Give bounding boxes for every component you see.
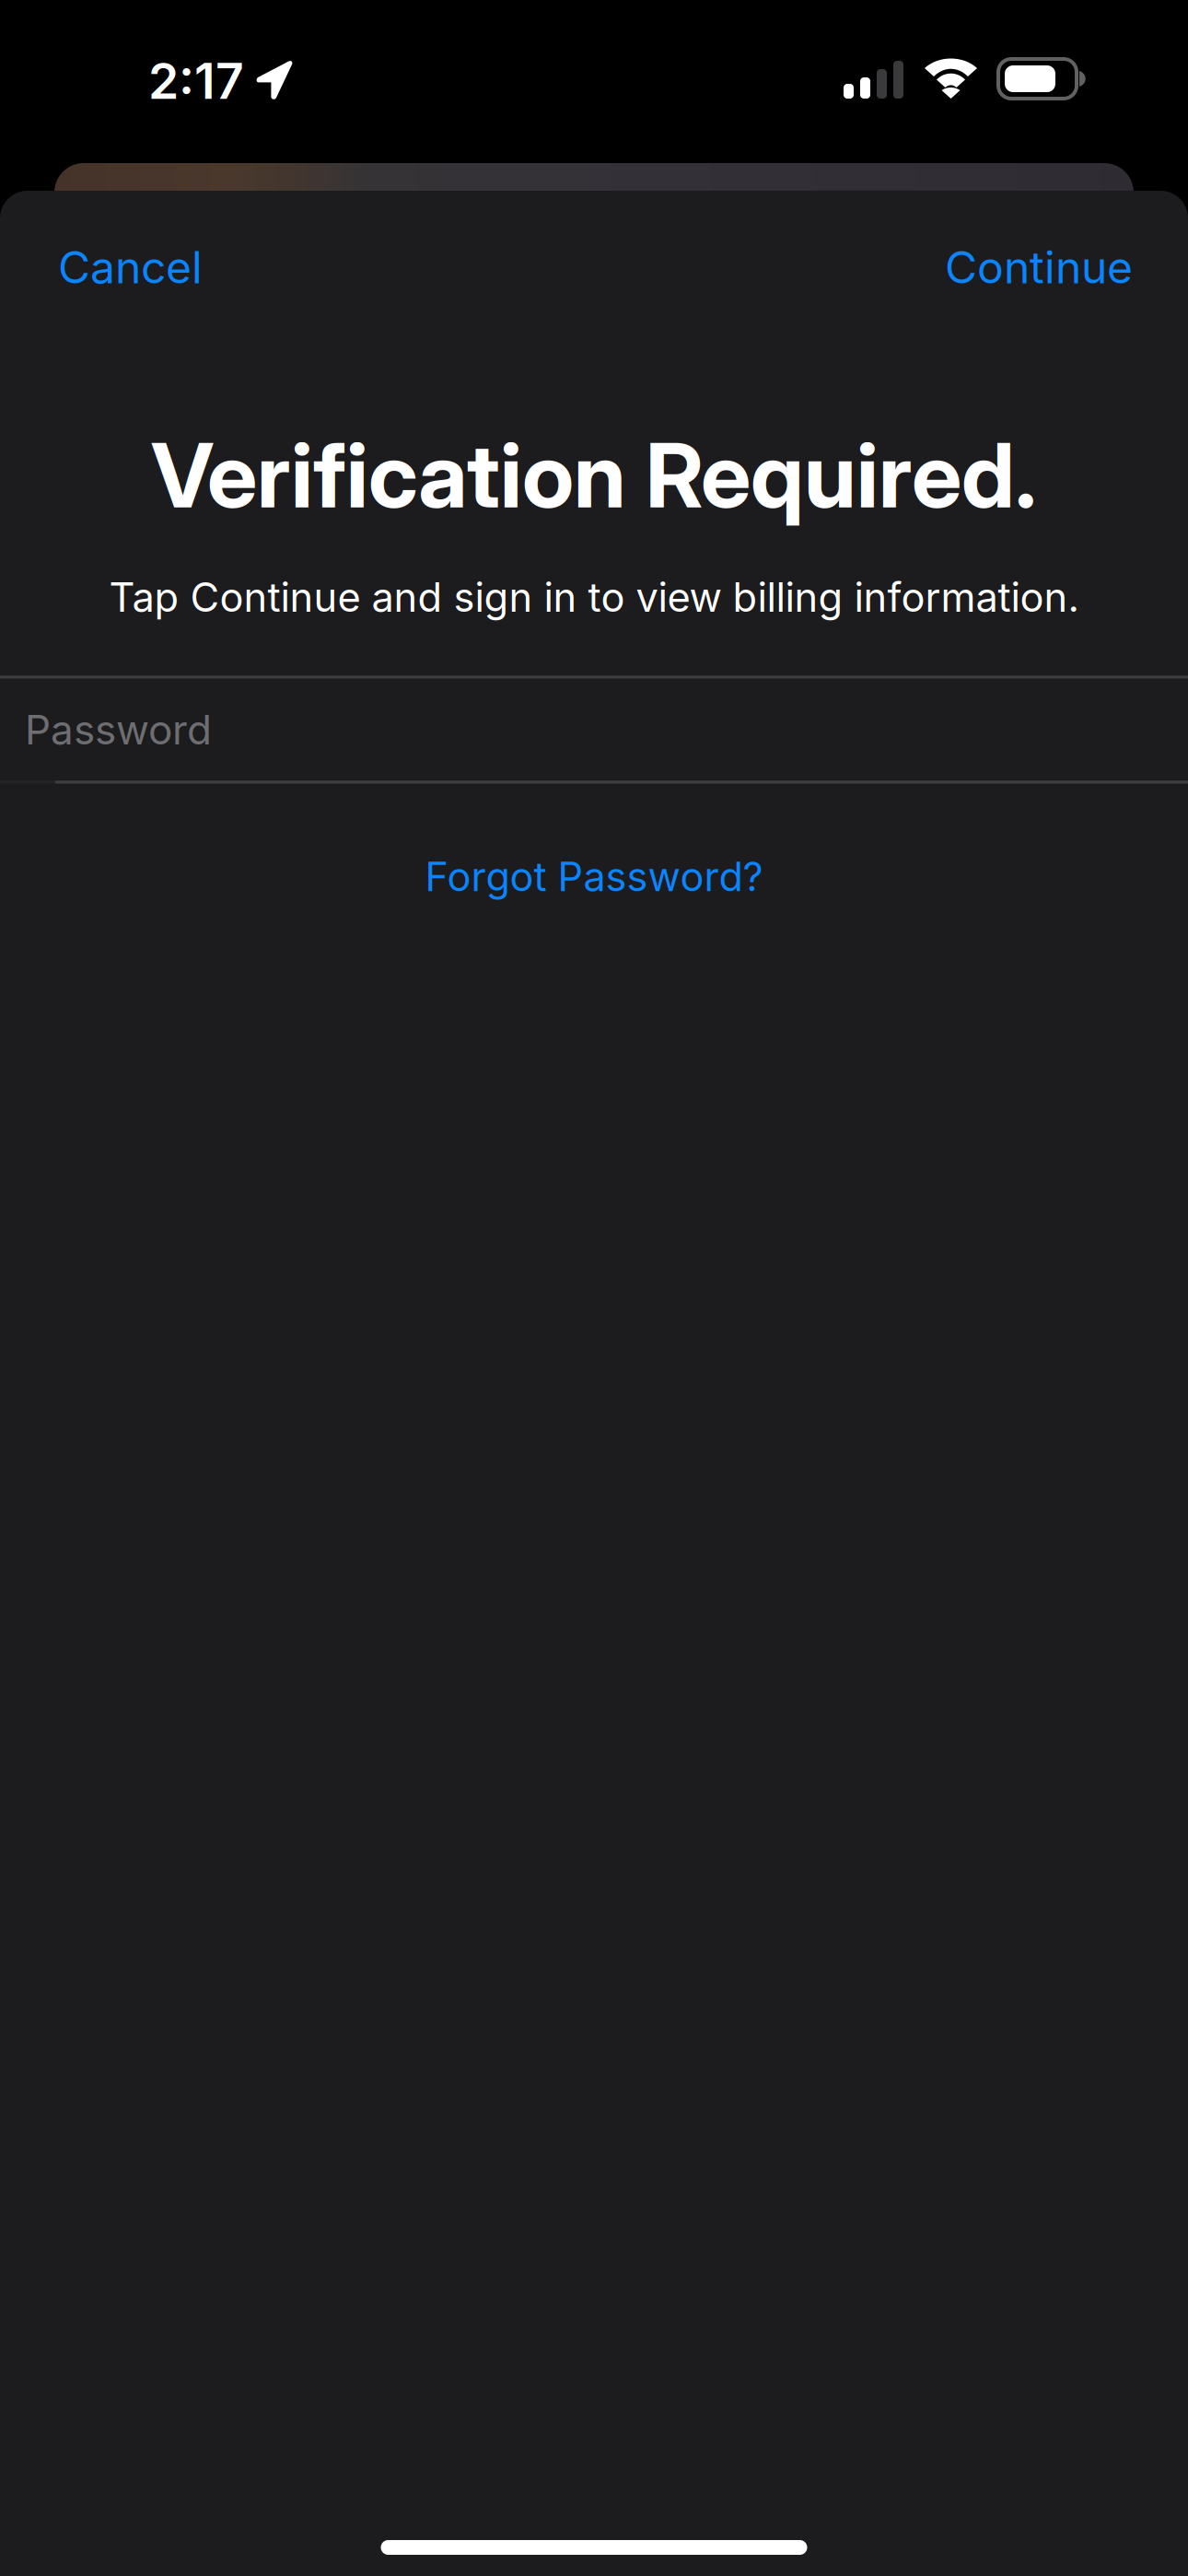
staticText: Forgot Password? (425, 853, 763, 901)
button[interactable]: Password (0, 676, 1188, 783)
staticText: Continue (945, 240, 1133, 294)
staticText: Password (25, 705, 212, 754)
button[interactable]: Cancel (41, 224, 219, 311)
button[interactable]: Forgot Password? (388, 829, 800, 925)
staticText: Verification Required. (151, 421, 1037, 529)
staticText: Cancel (58, 240, 203, 294)
staticText: Tap Continue and sign in to view billing… (109, 573, 1079, 621)
staticText: 2:17 (148, 51, 244, 111)
button[interactable]: Continue (928, 224, 1149, 311)
